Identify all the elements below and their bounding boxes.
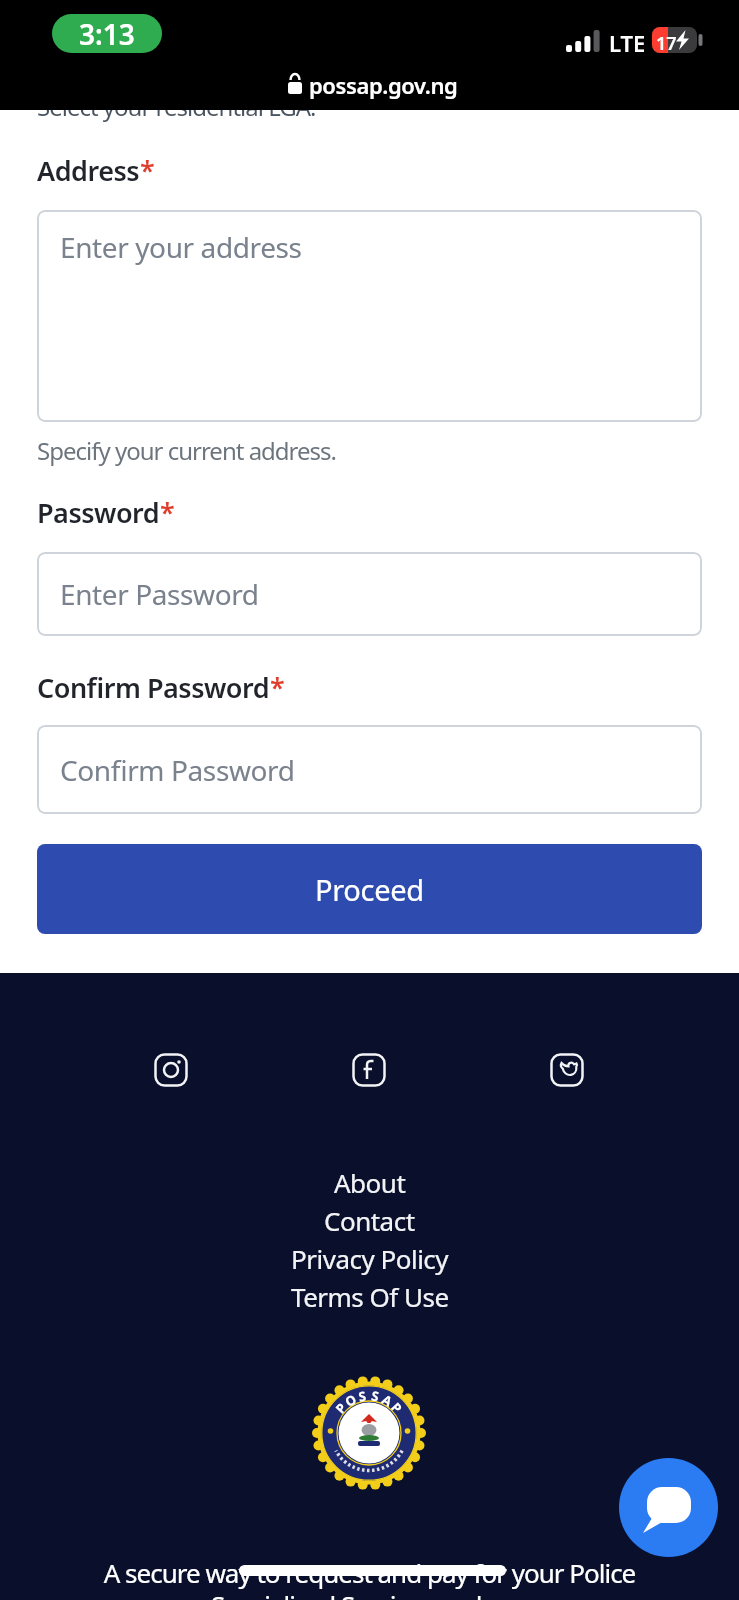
staticText: Specialised Services and pay <box>0 1587 739 1600</box>
staticText: Terms Of Use <box>291 1279 449 1314</box>
staticText: 3:13 <box>79 15 135 53</box>
staticText: Enter Password <box>60 575 259 613</box>
staticText: Contact <box>324 1203 415 1238</box>
staticText: * <box>160 494 175 531</box>
button[interactable]: Privacy Policy <box>291 1239 449 1277</box>
button[interactable]: 3:13 <box>52 14 162 53</box>
staticText: Privacy Policy <box>291 1241 449 1276</box>
staticText: * <box>270 669 285 706</box>
button[interactable]: Terms Of Use <box>291 1277 449 1315</box>
staticText: Specify your current address. <box>37 434 337 467</box>
button[interactable] <box>550 1053 584 1087</box>
button[interactable] <box>352 1053 386 1087</box>
button[interactable] <box>154 1053 188 1087</box>
staticText: Password <box>37 494 160 531</box>
staticText: Enter your address <box>60 228 302 266</box>
button[interactable]: Enter Password <box>37 552 702 636</box>
staticText: * <box>140 152 155 189</box>
staticText: possap.gov.ng <box>309 70 458 100</box>
button[interactable]: About <box>334 1163 406 1201</box>
staticText: Proceed <box>315 870 424 909</box>
button[interactable]: Contact <box>324 1201 415 1239</box>
staticText: LTE <box>609 28 646 58</box>
staticText: Address <box>37 152 140 189</box>
button[interactable] <box>619 1458 718 1557</box>
staticText: About <box>334 1165 406 1200</box>
staticText: Confirm Password <box>37 669 270 706</box>
staticText: 17 <box>656 31 677 56</box>
staticText: Confirm Password <box>60 751 295 789</box>
button[interactable]: Proceed <box>37 844 702 934</box>
button[interactable]: Enter your address <box>37 210 702 422</box>
button[interactable]: Confirm Password <box>37 725 702 814</box>
staticText: Select your residential LGA. <box>37 90 316 123</box>
staticText: A secure way to request and pay for your… <box>0 1555 739 1590</box>
